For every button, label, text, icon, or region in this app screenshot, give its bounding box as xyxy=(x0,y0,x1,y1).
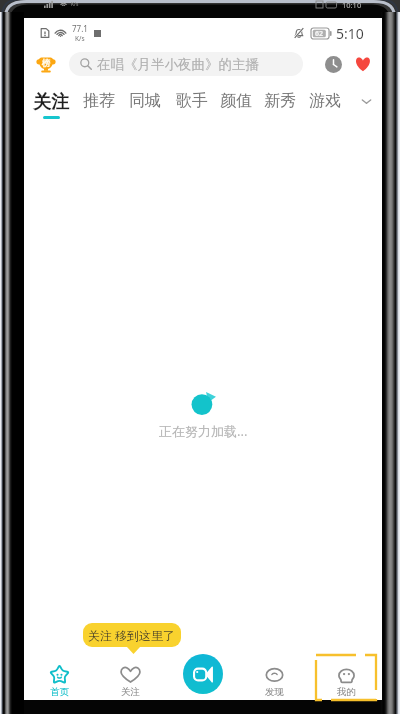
staticText: 新秀 xyxy=(264,91,296,111)
button[interactable]: History xyxy=(325,56,342,73)
staticText: 关注 xyxy=(121,686,140,698)
button[interactable]: 推荐 xyxy=(79,87,119,115)
button[interactable]: 新秀 xyxy=(260,87,300,115)
button[interactable]: Ranking xyxy=(35,53,57,75)
staticText: 在唱《月半小夜曲》的主播 xyxy=(97,56,259,73)
button[interactable]: 游戏 xyxy=(305,87,345,115)
staticText: 推荐 xyxy=(83,91,115,111)
staticText: 发现 xyxy=(265,686,284,698)
staticText: K/s xyxy=(75,34,85,43)
button[interactable]: Favorites xyxy=(354,55,372,73)
button[interactable]: 关注 xyxy=(31,91,71,119)
staticText: 关注 移到这里了 xyxy=(88,627,176,643)
button[interactable]: 关注 xyxy=(95,654,166,698)
button[interactable]: 我的 xyxy=(310,654,382,700)
button[interactable]: 发现 xyxy=(238,654,310,698)
staticText: 首页 xyxy=(50,686,69,698)
staticText: 62 xyxy=(315,29,324,39)
button[interactable]: 同城 xyxy=(125,87,165,115)
button[interactable]: 颜值 xyxy=(216,87,256,115)
staticText: 我的 xyxy=(337,686,356,698)
button[interactable]: More categories xyxy=(356,91,376,111)
button[interactable]: 歌手 xyxy=(172,87,212,115)
button[interactable]: Go live xyxy=(183,654,223,694)
button[interactable]: 关注 移到这里了 xyxy=(83,623,181,647)
staticText: 同城 xyxy=(129,91,161,111)
button[interactable]: 在唱《月半小夜曲》的主播 xyxy=(69,52,303,76)
staticText: 歌手 xyxy=(176,91,208,111)
staticText: 10:10 xyxy=(342,0,362,9)
button[interactable]: 首页 xyxy=(24,654,95,698)
staticText: 榜 xyxy=(42,58,51,69)
staticText: 正在努力加载... xyxy=(159,422,248,440)
staticText: K/s xyxy=(71,1,79,8)
staticText: 77.1 xyxy=(72,23,88,34)
staticText: 5:10 xyxy=(336,24,364,43)
staticText: 颜值 xyxy=(220,91,252,111)
staticText: 关注 xyxy=(33,91,69,114)
staticText: 游戏 xyxy=(309,91,341,111)
